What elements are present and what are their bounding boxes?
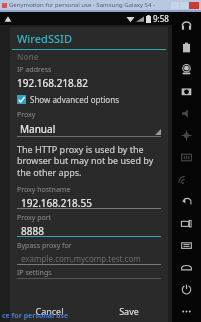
staticText: None <box>17 51 39 62</box>
staticText: WiredSSID <box>17 31 72 46</box>
button[interactable]: Volume <box>172 102 201 124</box>
button[interactable]: Show advanced options <box>17 94 161 105</box>
button[interactable]: Home <box>172 256 201 278</box>
button[interactable]: Camera <box>172 80 201 102</box>
button[interactable]: 8888 <box>17 224 161 237</box>
button[interactable]: Identifiers <box>172 146 201 168</box>
button[interactable]: Rotate <box>172 124 201 146</box>
staticText: The HTTP proxy is used by the browser bu… <box>17 143 161 179</box>
button[interactable]: 192.168.218.55 <box>17 196 161 209</box>
button[interactable]: Network <box>172 168 201 190</box>
staticText: Bypass proxy for <box>17 241 72 251</box>
button[interactable]: Save <box>89 302 168 320</box>
staticText: 8888 <box>21 224 44 237</box>
staticText: Manual <box>20 122 56 136</box>
button[interactable]: More <box>172 300 201 322</box>
button[interactable]: GPS <box>172 58 201 80</box>
staticText: IP address <box>17 65 52 75</box>
staticText: 9:58 <box>153 13 169 24</box>
staticText: Genymotion for personal use - Samsung Ga… <box>9 1 155 9</box>
button[interactable]: Recents <box>172 212 201 234</box>
button[interactable]: Battery <box>172 36 201 58</box>
button[interactable]: example.com,mycomp.test.com <box>17 252 161 265</box>
button[interactable]: Manual <box>17 121 161 137</box>
staticText: ce for personal use <box>2 311 69 321</box>
staticText: 192.168.218.82 <box>17 76 88 90</box>
staticText: 192.168.218.55 <box>21 196 92 209</box>
staticText: Proxy hostname <box>17 185 71 195</box>
button[interactable]: Menu <box>172 234 201 256</box>
staticText: Proxy <box>17 110 36 120</box>
button[interactable]: Power <box>172 278 201 300</box>
button[interactable]: Headset <box>172 14 201 36</box>
staticText: Cancel <box>35 305 64 317</box>
staticText: example.com,mycomp.test.com <box>21 253 141 264</box>
staticText: Proxy port <box>17 213 52 223</box>
staticText: Show advanced options <box>30 94 119 105</box>
button[interactable]: Back <box>172 190 201 212</box>
button[interactable]: Cancel <box>10 302 89 320</box>
staticText: Save <box>119 305 139 317</box>
staticText: IP settings <box>17 268 52 278</box>
